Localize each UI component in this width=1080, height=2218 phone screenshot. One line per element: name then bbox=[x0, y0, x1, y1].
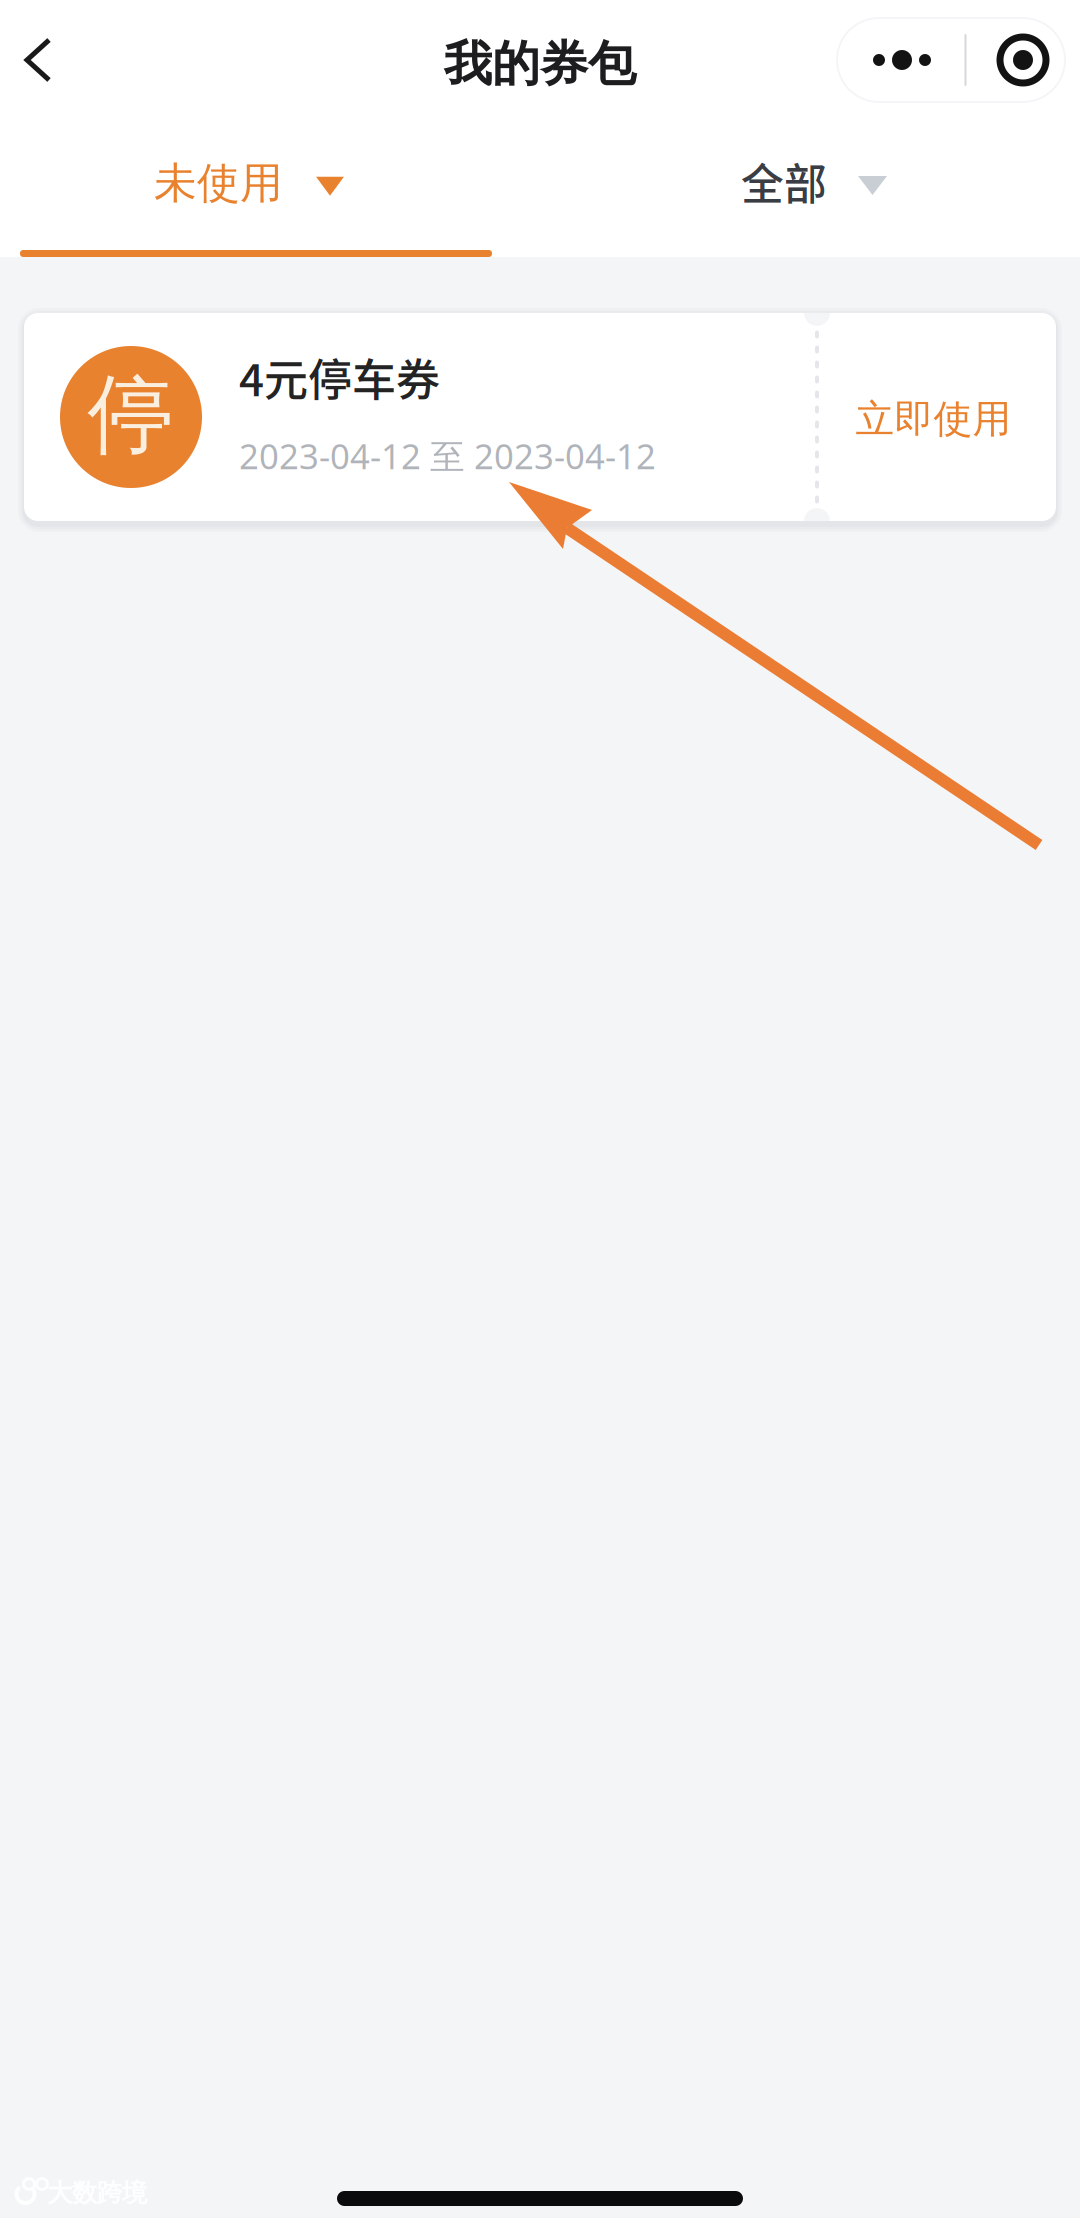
button[interactable]: 更多 bbox=[837, 18, 1065, 102]
staticText: 全部 bbox=[741, 151, 827, 212]
staticText: 4元停车券 bbox=[239, 345, 440, 409]
staticText: 停 bbox=[87, 362, 174, 468]
button[interactable]: 返回 bbox=[0, 0, 76, 120]
button[interactable]: 停 bbox=[24, 313, 1056, 521]
button[interactable]: 未使用 bbox=[20, 120, 492, 257]
button[interactable]: 全部 bbox=[740, 127, 888, 249]
staticText: 大数跨境 bbox=[47, 2177, 147, 2208]
staticText: 2023-04-12 至 2023-04-12 bbox=[239, 433, 656, 479]
staticText: 我的券包 bbox=[444, 34, 636, 93]
staticText: 未使用 bbox=[154, 157, 283, 209]
staticText: 立即使用 bbox=[855, 395, 1011, 443]
